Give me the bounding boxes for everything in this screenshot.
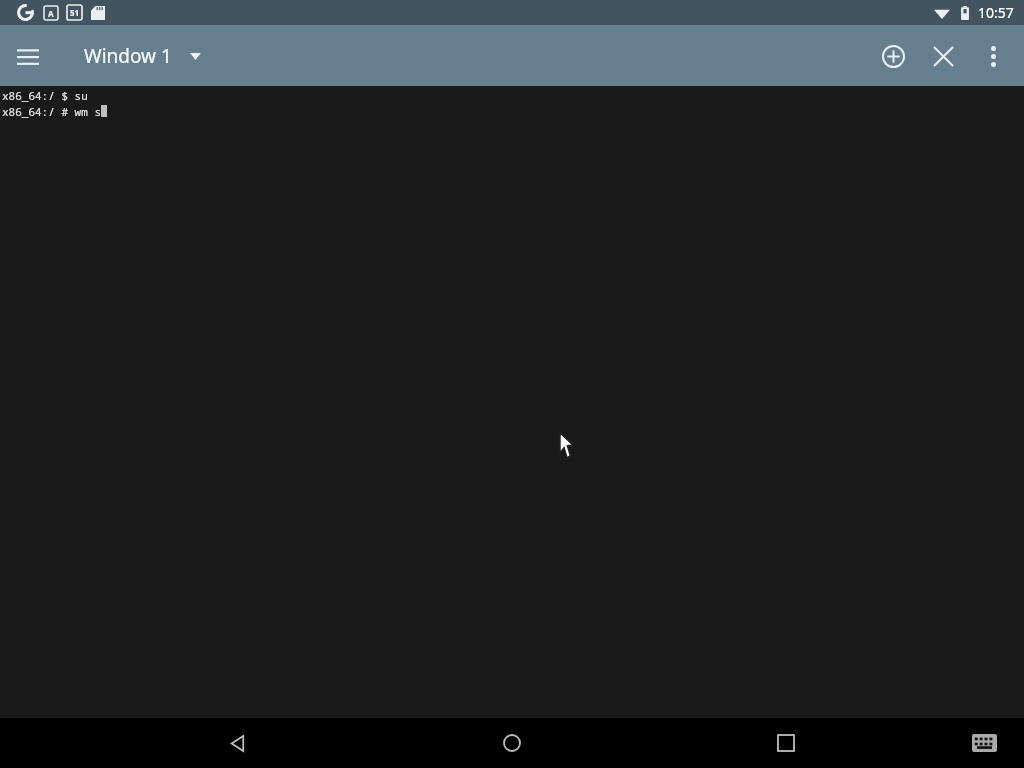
staticText: A xyxy=(48,8,54,19)
button[interactable]: More options xyxy=(968,31,1018,81)
button[interactable]: New window xyxy=(868,31,918,81)
button[interactable]: Close window xyxy=(918,31,968,81)
staticText: 51 xyxy=(70,7,80,18)
button[interactable]: Back xyxy=(202,718,274,768)
button[interactable]: Window 1 xyxy=(56,43,215,69)
staticText: Window 1 xyxy=(84,43,172,69)
staticText: x86_64:/ $ su xyxy=(2,88,88,103)
button[interactable]: Show keyboard xyxy=(962,718,1006,768)
staticText: 10:57 xyxy=(978,3,1014,22)
staticText: x86_64:/ # wm s xyxy=(2,104,101,119)
button[interactable]: Home xyxy=(476,718,548,768)
button[interactable]: Open navigation drawer xyxy=(0,28,56,84)
button[interactable]: Recent apps xyxy=(750,718,822,768)
